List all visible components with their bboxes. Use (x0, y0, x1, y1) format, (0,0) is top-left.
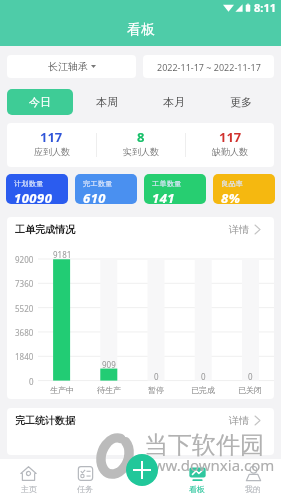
staticText: 完工统计数据 (15, 414, 75, 427)
staticText: 工单数量 (152, 179, 182, 188)
staticText: 看板 (189, 484, 205, 494)
staticText: 更多 (230, 95, 252, 109)
staticText: 117 (219, 128, 242, 146)
staticText: 生产中 (50, 385, 74, 395)
staticText: 0 (154, 371, 159, 382)
button[interactable]: 我的 (225, 459, 281, 500)
staticText: 实到人数 (123, 146, 159, 157)
button[interactable]: 完工数量 (75, 174, 137, 204)
staticText: www.downxia.com (142, 455, 275, 475)
button[interactable]: 良品率 (213, 174, 275, 204)
staticText: 1840 (15, 351, 34, 362)
staticText: 117 (40, 128, 63, 146)
staticText: 当下软件园 (144, 430, 264, 460)
staticText: 2022-11-17 ~ 2022-11-17 (157, 61, 261, 73)
button[interactable]: 117 (186, 123, 274, 167)
staticText: 我的 (245, 484, 261, 494)
staticText: 5520 (15, 303, 34, 314)
button[interactable]: 本月 (140, 89, 207, 115)
staticText: 任务 (77, 484, 93, 494)
button[interactable]: Add (126, 454, 158, 486)
staticText: 610 (83, 189, 106, 204)
button[interactable]: 详情 (228, 411, 262, 430)
staticText: 10090 (14, 189, 53, 204)
staticText: 完工数量 (83, 179, 113, 188)
staticText: 9181 (53, 249, 72, 260)
staticText: 0 (29, 376, 34, 387)
button[interactable]: 更多 (207, 89, 274, 115)
staticText: 已完成 (191, 385, 215, 395)
staticText: 长江轴承 (48, 60, 88, 73)
staticText: 8:11 (254, 0, 276, 15)
staticText: 待生产 (97, 385, 121, 395)
staticText: 今日 (29, 95, 51, 109)
staticText: 9200 (15, 254, 34, 265)
staticText: 已关闭 (238, 385, 262, 395)
staticText: 7360 (15, 278, 34, 289)
staticText: 0 (248, 371, 253, 382)
staticText: 本月 (163, 95, 185, 109)
button[interactable]: 工单数量 (144, 174, 206, 204)
button[interactable]: 长江轴承 (7, 55, 136, 78)
button[interactable]: 计划数量 (6, 174, 68, 204)
staticText: 详情 (229, 223, 249, 236)
staticText: 良品率 (221, 179, 244, 188)
button[interactable]: 8 (97, 123, 185, 167)
staticText: 8 (137, 128, 145, 146)
staticText: 详情 (229, 414, 249, 427)
staticText: 本周 (96, 95, 118, 109)
staticText: 看板 (127, 21, 155, 39)
button[interactable]: 看板 (169, 459, 225, 500)
staticText: 909 (102, 359, 116, 370)
button[interactable]: 117 (7, 123, 96, 167)
button[interactable]: 本周 (73, 89, 140, 115)
staticText: 缺勤人数 (212, 146, 248, 157)
staticText: 工单完成情况 (15, 223, 75, 236)
staticText: 应到人数 (34, 146, 70, 157)
button[interactable]: 主页 (0, 459, 57, 500)
staticText: 计划数量 (14, 179, 44, 188)
button[interactable]: 今日 (7, 89, 73, 115)
staticText: 暂停 (148, 385, 164, 395)
button[interactable]: 详情 (228, 220, 262, 239)
button[interactable]: 任务 (57, 459, 113, 500)
button[interactable]: 2022-11-17 ~ 2022-11-17 (143, 55, 274, 78)
staticText: 3680 (15, 327, 34, 338)
staticText: 141 (152, 189, 175, 204)
staticText: 8% (221, 189, 241, 204)
staticText: 0 (201, 371, 206, 382)
staticText: 主页 (21, 484, 37, 494)
